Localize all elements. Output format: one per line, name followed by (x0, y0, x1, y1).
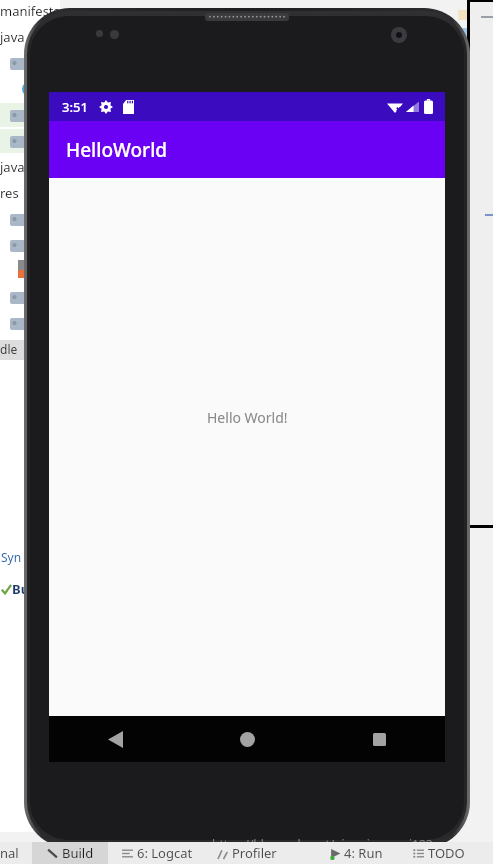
staticText: 6: Logcat (137, 844, 193, 862)
staticText: res (0, 184, 19, 202)
button[interactable]: Home (181, 716, 313, 762)
staticText: Syn (1, 549, 22, 565)
button[interactable]: Profiler (218, 844, 277, 862)
staticText: java (0, 28, 25, 46)
button[interactable]: TODO (413, 844, 465, 862)
button[interactable]: 4: Run (330, 844, 383, 862)
staticText: Hello World! (207, 408, 288, 427)
staticText: Profiler (232, 844, 277, 862)
button[interactable]: Recent apps (313, 716, 445, 762)
staticText: TODO (428, 844, 465, 862)
button[interactable]: HelloWorld (49, 121, 445, 178)
staticText: manifests (0, 2, 60, 20)
staticText: 4: Run (344, 844, 383, 862)
button[interactable]: Back (49, 716, 181, 762)
staticText: dle (0, 341, 18, 357)
staticText: nal (0, 844, 19, 862)
staticText: java (0, 158, 25, 176)
button[interactable]: 6: Logcat (122, 844, 193, 862)
staticText: HelloWorld (66, 137, 168, 163)
staticText: 3:51 (62, 98, 88, 116)
staticText: https://blog.csdn.net/pingpingwuqi123 (212, 836, 433, 852)
staticText: Bu (12, 580, 30, 598)
button[interactable]: Build (32, 842, 108, 864)
staticText: Build (62, 844, 94, 862)
